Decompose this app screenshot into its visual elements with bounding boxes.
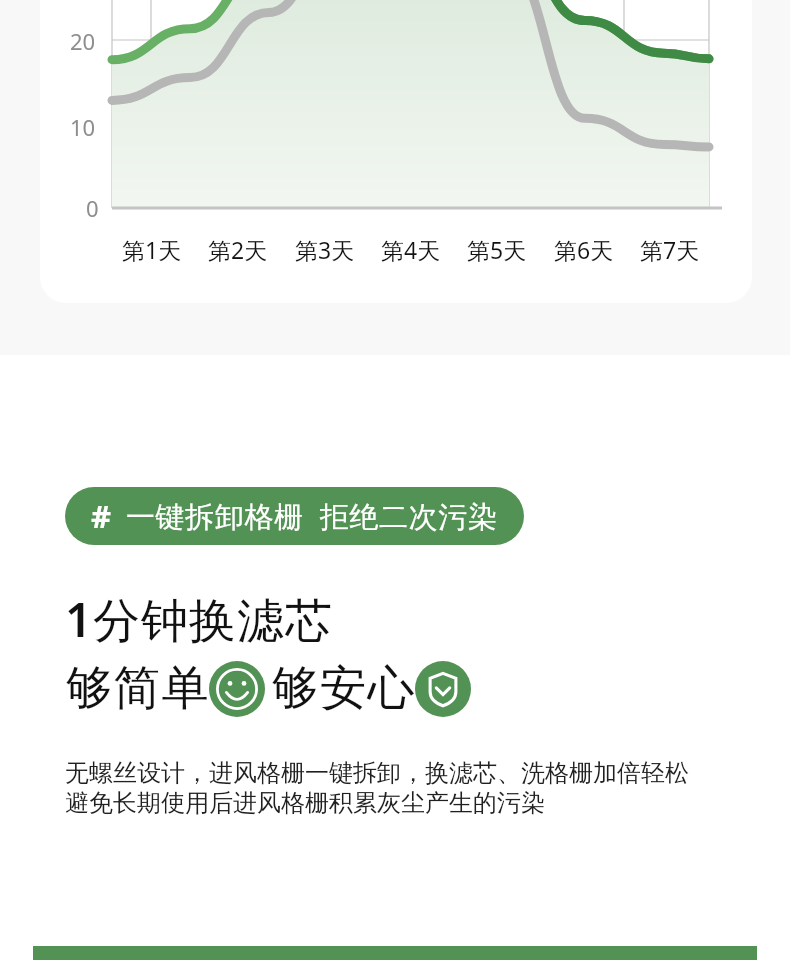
staticText: 0 <box>86 193 99 223</box>
other: Safe <box>415 661 471 717</box>
staticText: 无螺丝设计，进风格栅一键拆卸，换滤芯、洗格栅加倍轻松 <box>65 758 689 788</box>
staticText: 第4天 <box>381 234 441 265</box>
staticText: 第7天 <box>640 234 700 265</box>
button[interactable]: # <box>65 487 524 545</box>
staticText: 第1天 <box>122 234 182 265</box>
other: Simple <box>209 661 265 717</box>
staticText: 20 <box>70 26 96 56</box>
staticText: 1分钟换滤芯 <box>65 587 333 651</box>
staticText: 10 <box>70 112 96 142</box>
staticText: 第2天 <box>208 234 268 265</box>
staticText: 第5天 <box>467 234 527 265</box>
staticText: 够安心 <box>271 659 415 718</box>
staticText: 第3天 <box>295 234 355 265</box>
staticText: 第6天 <box>554 234 614 265</box>
staticText: 够简单 <box>65 659 209 718</box>
staticText: 一键拆卸格栅 拒绝二次污染 <box>126 496 498 536</box>
staticText: 避免长期使用后进风格栅积累灰尘产生的污染 <box>65 788 545 818</box>
staticText: # <box>91 495 112 537</box>
